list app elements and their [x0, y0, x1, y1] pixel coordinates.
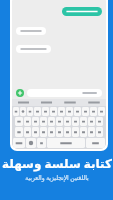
button[interactable]: [82, 99, 106, 106]
button[interactable]: [27, 107, 33, 116]
button[interactable]: [56, 117, 63, 126]
button[interactable]: [12, 99, 35, 106]
button[interactable]: [13, 107, 19, 116]
staticText: كتابة سلسة وسهلة: [2, 155, 112, 171]
button[interactable]: Add attachment: [16, 89, 24, 97]
button[interactable]: [64, 127, 71, 137]
button[interactable]: [80, 117, 87, 126]
button[interactable]: [56, 127, 63, 137]
button[interactable]: [48, 127, 55, 137]
button[interactable]: [96, 117, 103, 126]
button[interactable]: [42, 107, 49, 116]
button[interactable]: [88, 127, 95, 137]
button[interactable]: [90, 107, 97, 116]
button[interactable]: [15, 117, 23, 126]
button[interactable]: [86, 138, 105, 148]
button[interactable]: [72, 127, 79, 137]
button[interactable]: [88, 117, 95, 126]
button[interactable]: [72, 117, 79, 126]
staticText: باللغتين الإنجليزية والعربية: [25, 174, 89, 182]
button[interactable]: [40, 117, 47, 126]
button[interactable]: [37, 138, 46, 148]
button[interactable]: [80, 127, 87, 137]
button[interactable]: [48, 117, 55, 126]
button[interactable]: [27, 89, 102, 97]
button[interactable]: [58, 99, 82, 106]
button[interactable]: [47, 138, 85, 148]
button[interactable]: [74, 107, 81, 116]
button[interactable]: [50, 107, 57, 116]
button[interactable]: [16, 27, 46, 35]
button[interactable]: [16, 45, 51, 53]
button[interactable]: [35, 99, 58, 106]
button[interactable]: [66, 107, 73, 116]
button[interactable]: [13, 138, 25, 148]
button[interactable]: [24, 117, 31, 126]
button[interactable]: [58, 107, 65, 116]
button[interactable]: [15, 127, 23, 137]
button[interactable]: [34, 107, 41, 116]
button[interactable]: [82, 107, 89, 116]
button[interactable]: [96, 127, 103, 137]
button[interactable]: [98, 107, 105, 116]
button[interactable]: [32, 117, 39, 126]
button[interactable]: [32, 127, 39, 137]
button[interactable]: [26, 138, 36, 148]
button[interactable]: [20, 107, 26, 116]
button[interactable]: [62, 7, 102, 16]
button[interactable]: [40, 127, 47, 137]
button[interactable]: [24, 127, 31, 137]
button[interactable]: [64, 117, 71, 126]
